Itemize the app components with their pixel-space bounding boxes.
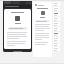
button[interactable] xyxy=(35,20,50,22)
button[interactable]: Home xyxy=(13,51,22,52)
button[interactable]: List item xyxy=(53,27,60,31)
button[interactable]: List item xyxy=(53,7,60,11)
button[interactable] xyxy=(8,27,27,30)
button[interactable]: Back xyxy=(35,4,37,6)
button[interactable]: List item xyxy=(53,17,60,21)
button[interactable]: Address bar xyxy=(3,5,32,8)
button[interactable]: List item xyxy=(53,12,60,16)
button[interactable]: Back xyxy=(33,2,52,57)
button[interactable]: List item xyxy=(53,22,60,26)
button[interactable]: List item xyxy=(53,42,60,46)
button[interactable]: List item xyxy=(53,2,60,6)
button[interactable]: List item xyxy=(53,32,60,36)
button[interactable]: Tab xyxy=(3,0,32,52)
button[interactable]: List item xyxy=(53,37,60,41)
button[interactable]: Icon xyxy=(41,11,45,15)
button[interactable]: List item xyxy=(53,47,60,51)
button[interactable]: Logo xyxy=(15,16,20,21)
